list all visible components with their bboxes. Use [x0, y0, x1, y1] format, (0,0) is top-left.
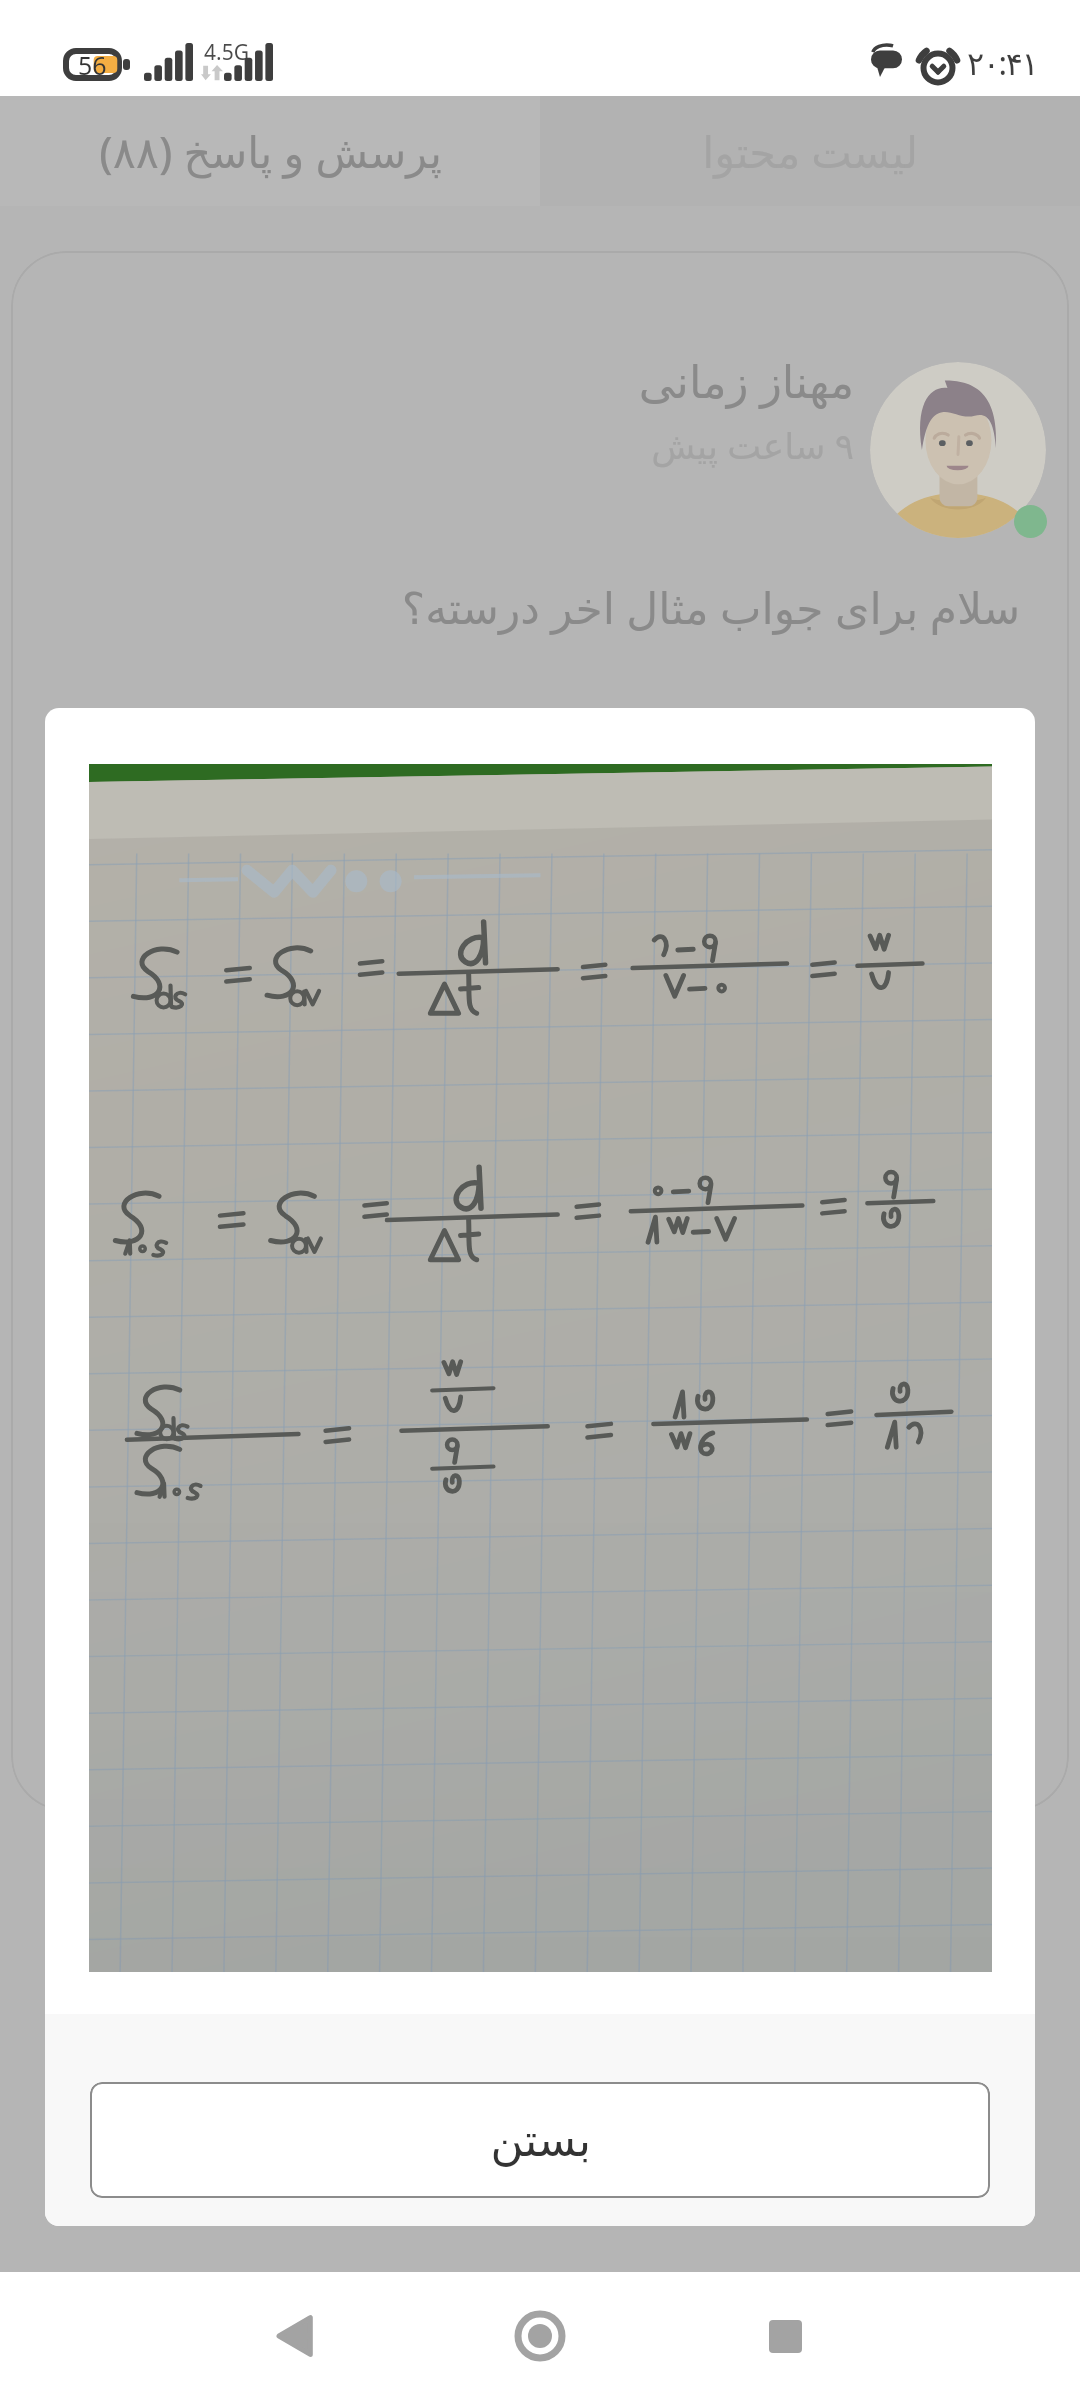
staticText: ۲۰:۴۱	[967, 41, 1038, 85]
button[interactable]: Home	[480, 2276, 600, 2396]
staticText: لیست محتوا	[702, 122, 918, 181]
staticText: مهناز زمانی	[638, 350, 854, 411]
button[interactable]: Recents	[725, 2276, 845, 2396]
button[interactable]: پرسش و پاسخ (۸۸)	[0, 96, 540, 206]
staticText: پرسش و پاسخ (۸۸)	[99, 122, 442, 181]
staticText: بستن	[490, 2114, 591, 2166]
button[interactable]: بستن	[90, 2082, 990, 2198]
staticText: سلام برای جواب مثال اخر درسته؟	[28, 577, 1020, 637]
staticText: ۹ ساعت پیش	[651, 421, 854, 470]
button[interactable]: Back	[235, 2276, 355, 2396]
staticText: 4.5G	[204, 38, 249, 67]
button[interactable]: مهناز زمانی	[11, 251, 1069, 1811]
staticText: 56	[78, 48, 107, 81]
